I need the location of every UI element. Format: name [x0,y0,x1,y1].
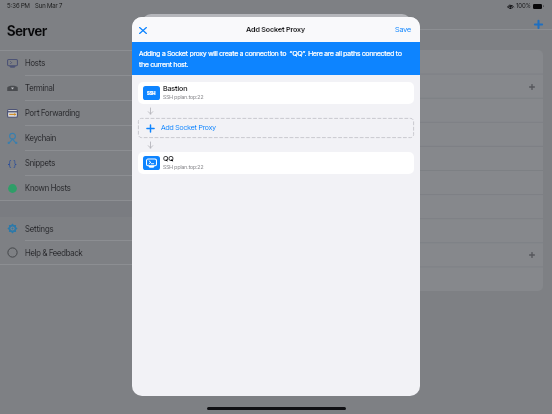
button[interactable] [148,99,543,123]
staticText: Hosts [25,58,46,68]
button[interactable] [148,50,543,75]
staticText: Help & Feedback [25,248,83,258]
staticText: Save [395,25,412,34]
button[interactable] [148,171,543,195]
button[interactable] [148,147,543,171]
button[interactable] [148,123,543,147]
button[interactable]: Add host [534,20,543,29]
staticText: Settings [25,224,54,234]
staticText: Bastion [163,84,188,93]
other: Add [529,84,535,90]
staticText: Terminal [25,83,55,93]
button[interactable]: Port Forwarding [0,101,132,125]
button[interactable] [148,267,543,291]
staticText: SSH pplan.top:22 [163,164,204,171]
button[interactable]: SSH [138,82,414,104]
staticText: Add Socket Proxy [246,25,306,34]
button[interactable]: Terminal [0,76,132,100]
button[interactable]: Keychain [0,126,132,150]
other: Add [529,252,535,258]
staticText: Snippets [25,158,56,168]
staticText: Port Forwarding [25,108,80,118]
button[interactable]: Hosts [0,51,132,75]
staticText: QQ [163,154,174,163]
staticText: Adding a Socket proxy will create a conn… [139,49,413,68]
button[interactable]: Settings [0,217,132,240]
staticText: Sun Mar 7 [35,2,63,10]
staticText: { } [8,159,17,169]
button[interactable]: Help & Feedback [0,241,132,264]
staticText: Keychain [25,133,57,143]
button[interactable]: Save [389,20,420,39]
staticText: SSH [147,91,156,96]
button[interactable]: Close [133,20,153,40]
staticText: Add Socket Proxy [161,123,216,132]
button[interactable] [148,219,543,243]
button[interactable]: QQ [138,152,414,174]
button[interactable]: Add [148,243,543,267]
button[interactable]: Known Hosts [0,176,132,200]
button[interactable]: { } [0,151,132,175]
staticText: 5:36 PM [7,2,30,10]
staticText: SSH pplan.top:22 [163,94,204,101]
staticText: Server [7,23,47,39]
button[interactable] [148,195,543,219]
button[interactable]: Add [148,75,543,99]
staticText: 100% [516,2,531,10]
staticText: Known Hosts [25,183,71,193]
button[interactable]: Add Socket Proxy [138,118,414,138]
